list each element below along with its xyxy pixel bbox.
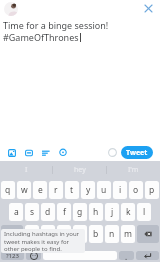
button[interactable]: f bbox=[57, 203, 71, 221]
button[interactable]: c bbox=[57, 225, 71, 243]
button[interactable]: Shift bbox=[1, 225, 23, 243]
staticText: a bbox=[14, 206, 19, 218]
staticText: e bbox=[38, 184, 43, 196]
staticText: x bbox=[46, 228, 51, 240]
button[interactable]: s bbox=[25, 203, 39, 221]
button[interactable]: a bbox=[9, 203, 23, 221]
button[interactable]: q bbox=[1, 181, 15, 199]
staticText: k bbox=[126, 206, 131, 218]
staticText: Including hashtags in your tweet makes i… bbox=[4, 230, 82, 252]
staticText: d bbox=[45, 206, 51, 218]
button[interactable]: Emoji bbox=[26, 251, 41, 260]
staticText: y bbox=[86, 184, 91, 196]
button[interactable]: p bbox=[145, 181, 159, 199]
staticText: I bbox=[25, 165, 28, 175]
staticText: Time for a binge session! bbox=[3, 19, 109, 31]
staticText: I'm bbox=[128, 165, 139, 175]
staticText: s bbox=[30, 206, 35, 218]
staticText: o bbox=[133, 184, 139, 196]
button[interactable]: u bbox=[97, 181, 111, 199]
staticText: m bbox=[124, 228, 132, 240]
staticText: j bbox=[111, 206, 114, 218]
staticText: ?123 bbox=[6, 252, 19, 260]
button[interactable]: d bbox=[41, 203, 55, 221]
staticText: hey bbox=[74, 165, 86, 175]
button[interactable]: Enter bbox=[136, 251, 159, 260]
button[interactable]: Period bbox=[119, 251, 134, 260]
staticText: t bbox=[70, 184, 74, 196]
button[interactable]: b bbox=[89, 225, 103, 243]
button[interactable]: w bbox=[17, 181, 31, 199]
button[interactable]: i bbox=[113, 181, 127, 199]
button[interactable] bbox=[43, 251, 117, 260]
staticText: r bbox=[54, 184, 58, 196]
button[interactable]: Numbers bbox=[1, 251, 24, 260]
button[interactable]: k bbox=[121, 203, 135, 221]
staticText: f bbox=[63, 206, 66, 218]
button[interactable]: r bbox=[49, 181, 63, 199]
button[interactable]: v bbox=[73, 225, 87, 243]
staticText: p bbox=[149, 184, 155, 196]
button[interactable]: m bbox=[121, 225, 135, 243]
button[interactable]: h bbox=[89, 203, 103, 221]
staticText: . bbox=[125, 251, 128, 260]
button[interactable]: z bbox=[25, 225, 39, 243]
staticText: w bbox=[21, 184, 28, 196]
button[interactable]: g bbox=[73, 203, 87, 221]
button[interactable]: x bbox=[41, 225, 55, 243]
button[interactable]: o bbox=[129, 181, 143, 199]
staticText: c bbox=[62, 228, 67, 240]
button[interactable]: Close bbox=[139, 0, 158, 18]
button[interactable]: hey bbox=[53, 161, 106, 179]
button[interactable]: n bbox=[105, 225, 119, 243]
button[interactable]: Tweet bbox=[121, 146, 153, 159]
button[interactable]: l bbox=[137, 203, 151, 221]
staticText: z bbox=[30, 228, 34, 240]
button[interactable]: Add photo bbox=[3, 144, 20, 161]
button[interactable]: Including hashtags in your tweet makes i… bbox=[1, 229, 85, 253]
button[interactable]: y bbox=[81, 181, 95, 199]
staticText: Tweet bbox=[126, 148, 148, 158]
button[interactable]: t bbox=[65, 181, 79, 199]
staticText: n bbox=[109, 228, 115, 240]
button[interactable]: j bbox=[105, 203, 119, 221]
staticText: g bbox=[77, 206, 83, 218]
staticText: #GameOfThrones bbox=[3, 31, 79, 43]
staticText: v bbox=[78, 228, 83, 240]
staticText: i bbox=[119, 184, 122, 196]
staticText: l bbox=[143, 206, 146, 218]
button[interactable]: Profile photo bbox=[4, 2, 18, 16]
button[interactable]: Add poll bbox=[37, 144, 54, 161]
staticText: h bbox=[93, 206, 99, 218]
button[interactable]: Add GIF bbox=[20, 144, 37, 161]
staticText: u bbox=[101, 184, 107, 196]
button[interactable]: Backspace bbox=[137, 225, 159, 243]
button[interactable]: Add location bbox=[54, 144, 71, 161]
staticText: b bbox=[93, 228, 99, 240]
staticText: q bbox=[5, 184, 11, 196]
button[interactable]: e bbox=[33, 181, 47, 199]
